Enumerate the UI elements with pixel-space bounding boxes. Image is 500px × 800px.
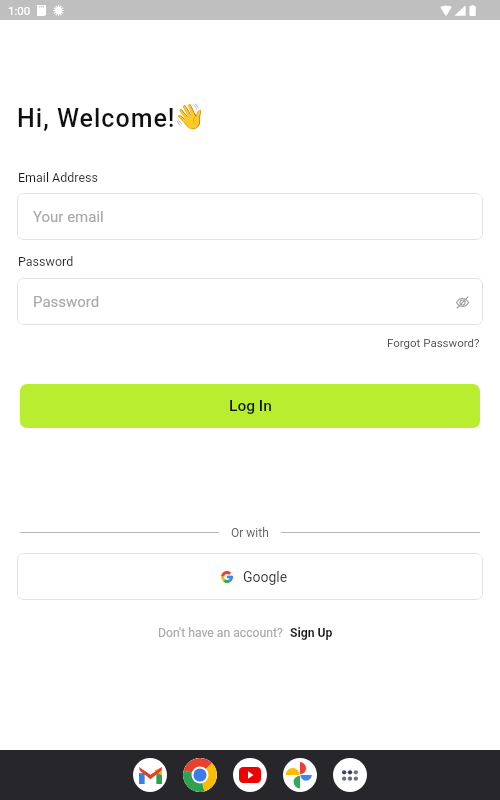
button[interactable]: Password xyxy=(17,278,483,325)
button[interactable]: YouTube xyxy=(233,758,267,792)
staticText: Your email xyxy=(33,208,104,226)
staticText: 👋 xyxy=(174,102,206,131)
button[interactable]: Google xyxy=(17,553,483,600)
staticText: Don't have an account? xyxy=(158,626,283,640)
staticText: Google xyxy=(243,569,288,585)
button[interactable]: Your email xyxy=(17,193,483,240)
staticText: Or with xyxy=(231,526,269,540)
staticText: Email Address xyxy=(18,170,98,185)
staticText: Password xyxy=(33,293,100,311)
button[interactable]: Photos xyxy=(283,758,317,792)
staticText: Hi, Welcome! xyxy=(17,104,176,133)
staticText: Password xyxy=(18,254,74,269)
button[interactable]: Forgot Password? xyxy=(387,336,480,349)
button[interactable]: Gmail xyxy=(133,758,167,792)
button[interactable]: Log In xyxy=(20,384,480,428)
button[interactable]: Show password xyxy=(450,290,474,314)
button[interactable]: Chrome xyxy=(183,758,217,792)
button[interactable]: Sign Up xyxy=(290,626,333,640)
staticText: Log In xyxy=(229,397,272,415)
staticText: 1:00 xyxy=(8,4,31,17)
button[interactable]: All apps xyxy=(333,758,367,792)
